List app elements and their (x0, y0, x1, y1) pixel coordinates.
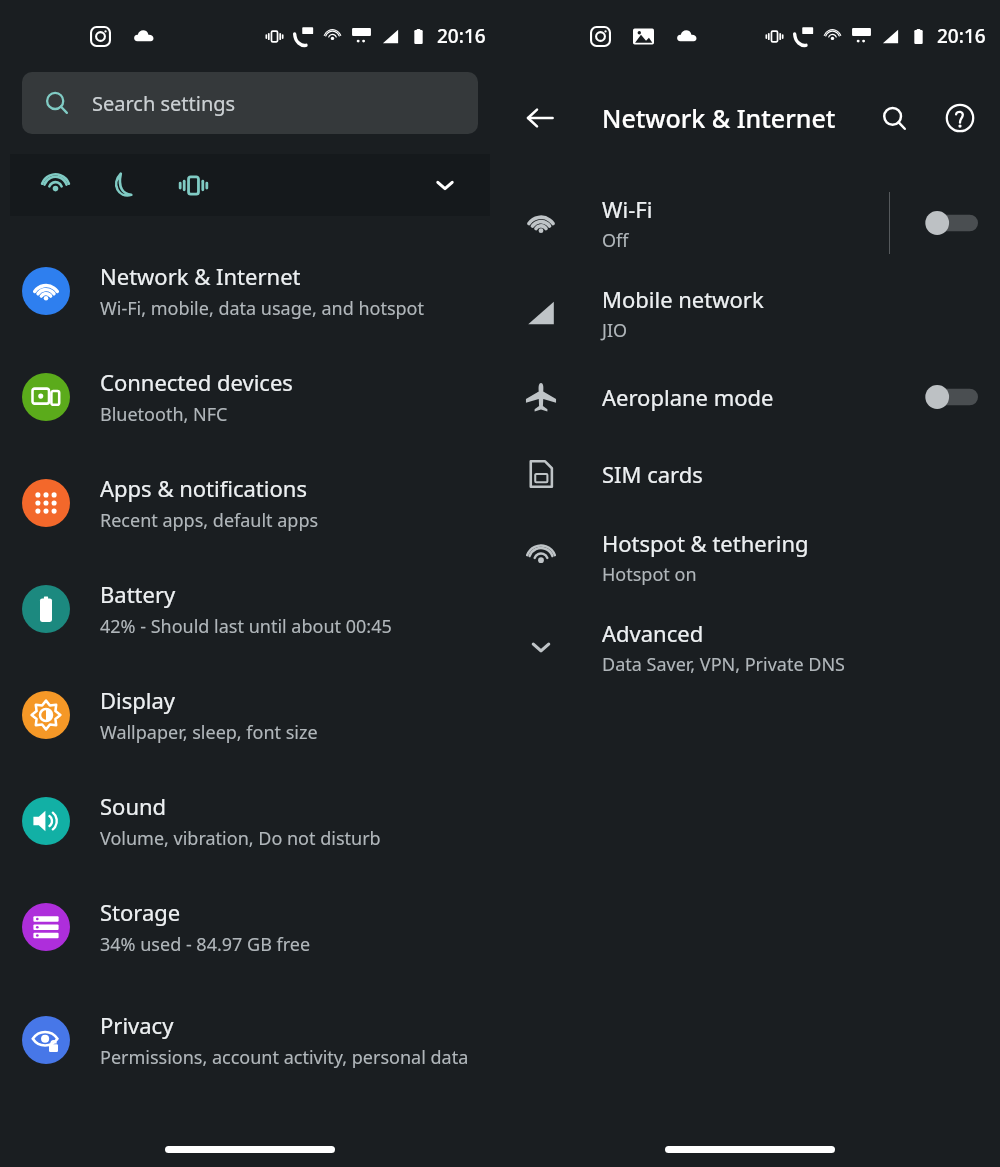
staticText: Storage (100, 897, 181, 927)
button[interactable]: Back (518, 96, 562, 140)
staticText: 20:16 (937, 23, 986, 49)
button[interactable]: Search (872, 96, 916, 140)
staticText: Recent apps, default apps (100, 508, 319, 533)
staticText: 20:16 (437, 23, 486, 49)
button[interactable]: Battery (0, 556, 500, 662)
staticText: Sound (100, 791, 167, 821)
button[interactable]: Help (938, 96, 982, 140)
button[interactable]: Privacy (0, 980, 500, 1099)
staticText: Privacy (100, 1010, 174, 1040)
staticText: Hotspot & tethering (602, 528, 809, 558)
button[interactable]: Connected devices (0, 344, 500, 450)
staticText: Wi-Fi, mobile, data usage, and hotspot (100, 296, 424, 321)
staticText: Network & Internet (100, 261, 301, 291)
button[interactable]: Expand quick settings (430, 170, 460, 200)
staticText: Display (100, 685, 176, 715)
staticText: Bluetooth, NFC (100, 402, 228, 427)
staticText: Network & Internet (602, 101, 836, 135)
button[interactable]: Apps & notifications (0, 450, 500, 556)
staticText: SIM cards (602, 459, 703, 489)
staticText: Apps & notifications (100, 473, 307, 503)
staticText: Advanced (602, 618, 704, 648)
button[interactable]: SIM cards (500, 435, 1000, 512)
button[interactable]: Aeroplane mode (500, 358, 1000, 435)
staticText: Aeroplane mode (602, 382, 774, 412)
staticText: Search settings (92, 90, 236, 117)
staticText: Battery (100, 579, 176, 609)
button[interactable]: Mobile network (500, 268, 1000, 358)
staticText: Mobile network (602, 284, 764, 314)
button[interactable]: Sound (0, 768, 500, 874)
staticText: Permissions, account activity, personal … (100, 1045, 469, 1070)
staticText: Wallpaper, sleep, font size (100, 720, 318, 745)
staticText: 34% used - 84.97 GB free (100, 932, 311, 957)
button[interactable]: Wi-Fi (500, 178, 1000, 268)
staticText: Off (602, 228, 629, 253)
staticText: Hotspot on (602, 562, 697, 587)
staticText: 42% - Should last until about 00:45 (100, 614, 392, 639)
staticText: Data Saver, VPN, Private DNS (602, 652, 845, 677)
button[interactable]: Expand quick settings (10, 154, 490, 216)
staticText: Connected devices (100, 367, 293, 397)
button[interactable]: Display (0, 662, 500, 768)
staticText: JIO (602, 318, 628, 343)
button[interactable]: Wi-Fi toggle (918, 201, 982, 245)
button[interactable]: Hotspot & tethering (500, 512, 1000, 602)
staticText: Wi-Fi (602, 194, 653, 224)
button[interactable]: Storage (0, 874, 500, 980)
button[interactable]: Search settings (22, 72, 478, 134)
staticText: Volume, vibration, Do not disturb (100, 826, 381, 851)
button[interactable]: Advanced (500, 602, 1000, 692)
button[interactable]: Aeroplane mode toggle (918, 375, 982, 419)
button[interactable]: Network & Internet (0, 238, 500, 344)
